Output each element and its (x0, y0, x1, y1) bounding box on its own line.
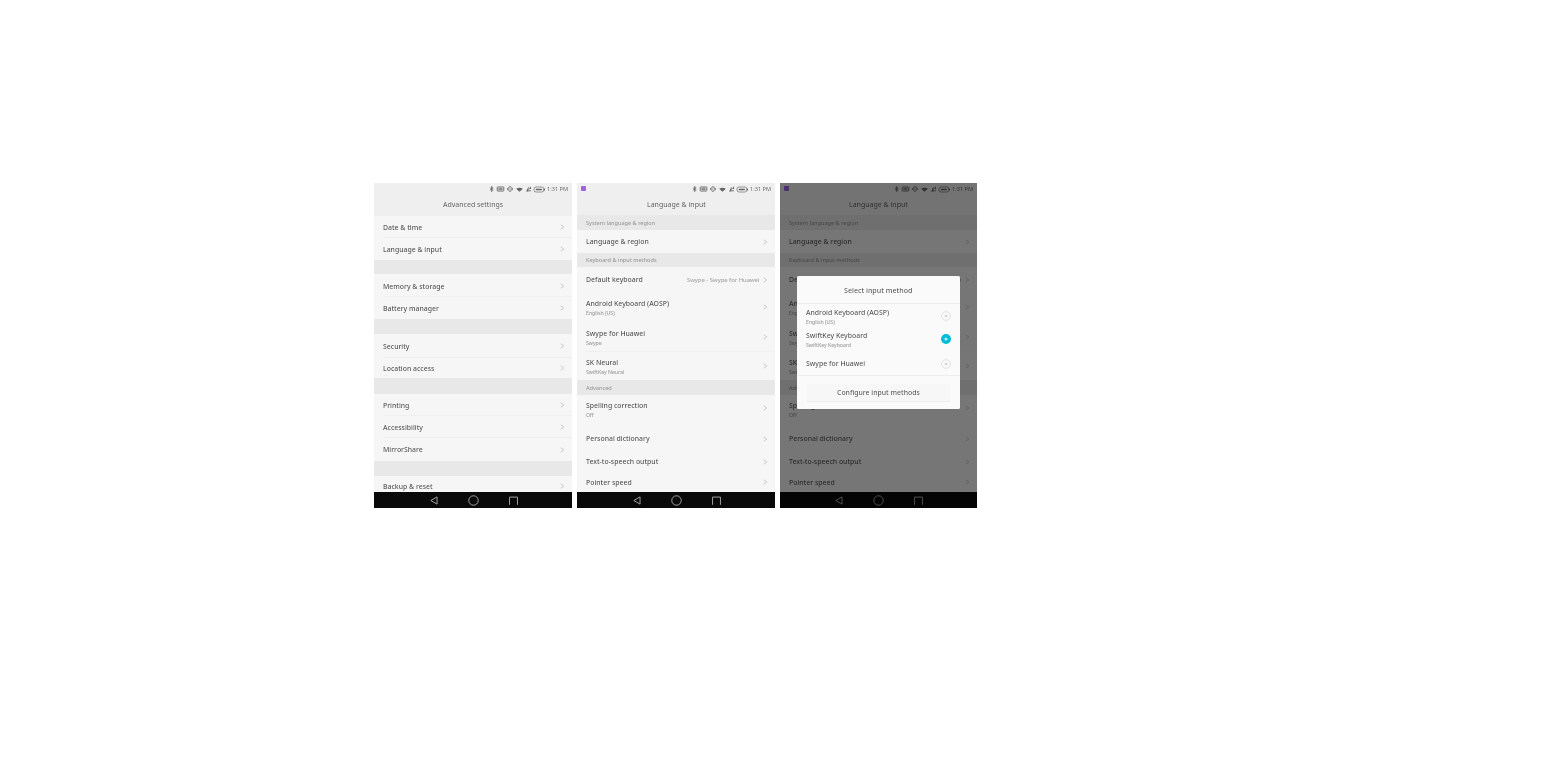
staticText: Off (586, 411, 594, 418)
staticText: Date & time (383, 223, 423, 232)
staticText: Language & input (647, 200, 706, 210)
button[interactable]: Home (660, 492, 693, 508)
button[interactable]: Home (457, 492, 490, 508)
staticText: MirrorShare (383, 445, 423, 454)
button[interactable]: Accessibility (374, 416, 572, 438)
button[interactable]: Back (620, 492, 653, 508)
button[interactable]: Recent apps (902, 492, 935, 508)
staticText: Keyboard & input methods (586, 256, 657, 264)
button[interactable]: Swype for Huawei (577, 322, 775, 352)
staticText: Printing (383, 401, 410, 410)
button[interactable]: Android Keyboard (AOSP) (577, 292, 775, 322)
button[interactable]: SwiftKey Keyboard (797, 327, 960, 351)
staticText: SwiftKey Keyboard (806, 341, 852, 348)
staticText: Swype for Huawei (789, 329, 849, 338)
button[interactable]: Recent apps (700, 492, 733, 508)
button[interactable]: Text-to-speech output (577, 450, 775, 473)
staticText: Backup & reset (383, 482, 433, 491)
button[interactable]: Back (417, 492, 450, 508)
staticText: Android Keyboard (AOSP) (586, 299, 670, 308)
button[interactable]: Pointer speed (577, 472, 775, 492)
staticText: Select input method (844, 285, 913, 295)
button[interactable]: Default keyboard (577, 267, 775, 292)
staticText: Swype - Swype for Huawei (889, 276, 962, 284)
button[interactable]: Spelling correction (577, 395, 775, 427)
staticText: SwiftKey Keyboard (806, 331, 868, 340)
staticText: English (US) (806, 318, 835, 325)
button[interactable]: Home (862, 492, 895, 508)
staticText: Swype for Huawei (806, 359, 866, 368)
staticText: Language & region (789, 237, 852, 246)
staticText: 1:31 PM (547, 185, 569, 193)
staticText: Advanced (789, 384, 815, 392)
button[interactable]: Language & region (577, 230, 775, 253)
button[interactable]: Recent apps (497, 492, 530, 508)
staticText: Personal dictionary (586, 434, 650, 443)
staticText: Text-to-speech output (789, 457, 862, 466)
staticText: Pointer speed (789, 478, 835, 487)
staticText: 1:31 PM (750, 185, 772, 193)
button[interactable]: Backup & reset (374, 476, 572, 496)
staticText: System language & region (789, 219, 859, 227)
staticText: Swype - Swype for Huawei (687, 276, 760, 284)
staticText: Spelling correction (789, 401, 851, 410)
staticText: Off (789, 411, 797, 418)
staticText: 1:31 PM (952, 185, 974, 193)
button[interactable]: MirrorShare (374, 438, 572, 461)
button[interactable]: Android Keyboard (AOSP) (797, 304, 960, 328)
staticText: Swype (586, 339, 602, 346)
staticText: Android Keyboard (AOSP) (789, 299, 873, 308)
button[interactable]: Default keyboard (780, 267, 977, 292)
button[interactable]: Printing (374, 394, 572, 416)
staticText: Default keyboard (789, 275, 846, 284)
button[interactable]: Security (374, 334, 572, 358)
button[interactable]: Pointer speed (780, 472, 977, 492)
staticText: Android Keyboard (AOSP) (806, 308, 890, 317)
button[interactable]: Personal dictionary (577, 427, 775, 450)
staticText: System language & region (586, 219, 656, 227)
button[interactable]: SK Neural (780, 352, 977, 380)
button[interactable]: Memory & storage (374, 275, 572, 297)
staticText: Language & region (586, 237, 649, 246)
staticText: Pointer speed (586, 478, 632, 487)
staticText: Swype for Huawei (586, 329, 646, 338)
staticText: Swype (789, 339, 805, 346)
staticText: SwiftKey Neural (789, 368, 828, 375)
staticText: Advanced settings (443, 200, 504, 210)
staticText: Text-to-speech output (586, 457, 659, 466)
staticText: Advanced (586, 384, 612, 392)
button[interactable]: SK Neural (577, 352, 775, 380)
button[interactable]: Personal dictionary (780, 427, 977, 450)
button[interactable]: Configure input methods (807, 384, 950, 401)
staticText: Default keyboard (586, 275, 643, 284)
staticText: Personal dictionary (789, 434, 853, 443)
staticText: English (US) (586, 309, 615, 316)
button[interactable]: Language & region (780, 230, 977, 253)
button[interactable]: Date & time (374, 216, 572, 238)
staticText: Battery manager (383, 304, 439, 313)
button[interactable]: Android Keyboard (AOSP) (780, 292, 977, 322)
staticText: Accessibility (383, 423, 423, 432)
staticText: Security (383, 342, 410, 351)
staticText: Language & input (383, 245, 442, 254)
staticText: Configure input methods (837, 388, 920, 397)
staticText: SK Neural (586, 358, 619, 367)
button[interactable]: Language & input (374, 238, 572, 260)
button[interactable]: Text-to-speech output (780, 450, 977, 473)
button[interactable]: Location access (374, 358, 572, 378)
button[interactable]: Back (822, 492, 855, 508)
staticText: Spelling correction (586, 401, 648, 410)
staticText: Location access (383, 364, 435, 373)
staticText: Memory & storage (383, 282, 445, 291)
staticText: Keyboard & input methods (789, 256, 860, 264)
button[interactable]: Swype for Huawei (797, 351, 960, 376)
staticText: SwiftKey Neural (586, 368, 625, 375)
button[interactable]: Battery manager (374, 297, 572, 319)
button[interactable]: Swype for Huawei (780, 322, 977, 352)
staticText: Language & input (849, 200, 908, 210)
staticText: SK Neural (789, 358, 822, 367)
staticText: English (US) (789, 309, 818, 316)
button[interactable]: Spelling correction (780, 395, 977, 427)
